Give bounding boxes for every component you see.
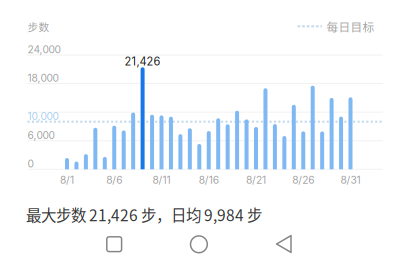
staticText: 18,000: [27, 72, 58, 84]
staticText: 步数: [27, 19, 49, 34]
staticText: 8/6: [106, 174, 122, 186]
staticText: 8/21: [246, 174, 266, 186]
staticText: 8/16: [199, 174, 219, 186]
button[interactable]: Home: [0, 0, 399, 266]
staticText: 0: [27, 158, 33, 170]
staticText: 8/26: [292, 174, 314, 186]
staticText: 8/31: [340, 174, 360, 186]
staticText: 最大步数 21,426 步，日均 9,984 步: [26, 203, 262, 226]
staticText: 6,000: [27, 129, 54, 141]
staticText: 10,000: [27, 110, 58, 122]
staticText: 8/1: [60, 174, 74, 186]
staticText: 每日目标: [326, 18, 374, 35]
staticText: 24,000: [27, 43, 60, 56]
button[interactable]: Recent apps: [0, 0, 399, 266]
button[interactable]: Back: [0, 0, 399, 266]
staticText: 8/11: [152, 174, 170, 186]
staticText: 21,426: [125, 55, 161, 68]
